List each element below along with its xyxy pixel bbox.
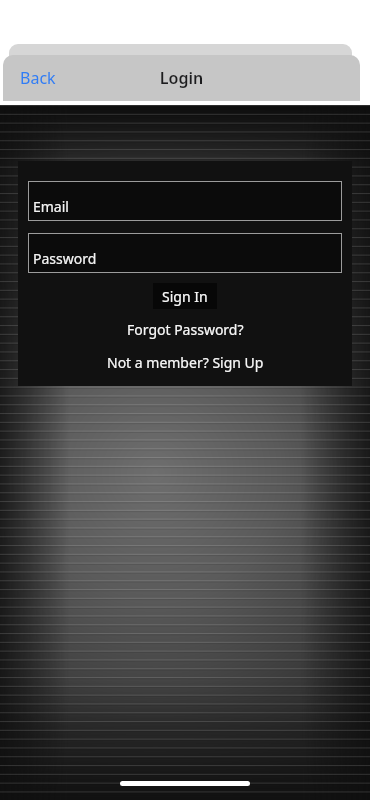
staticText: Email bbox=[33, 197, 69, 216]
button[interactable]: Not a member? Sign Up bbox=[97, 350, 274, 375]
staticText: Forgot Password? bbox=[127, 320, 244, 339]
staticText: Login bbox=[3, 67, 360, 89]
button[interactable]: Sign In bbox=[153, 283, 217, 309]
staticText: Password bbox=[33, 249, 97, 268]
staticText: Not a member? Sign Up bbox=[107, 353, 264, 372]
button[interactable]: Password bbox=[28, 233, 342, 273]
button[interactable]: Email bbox=[28, 181, 342, 221]
staticText: Back bbox=[20, 67, 56, 89]
other: Home indicator bbox=[120, 781, 250, 786]
button[interactable]: Back bbox=[12, 61, 64, 95]
staticText: Sign In bbox=[162, 287, 208, 306]
button[interactable]: Forgot Password? bbox=[117, 317, 254, 342]
